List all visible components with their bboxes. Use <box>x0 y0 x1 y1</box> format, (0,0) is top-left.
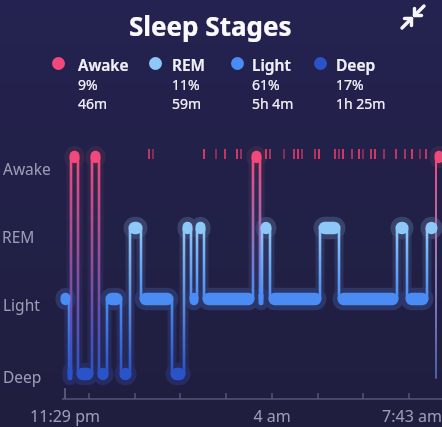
staticText: Deep <box>336 54 376 75</box>
staticText: Sleep Stages <box>129 8 292 43</box>
staticText: Light <box>252 54 291 75</box>
button[interactable] <box>398 2 430 34</box>
staticText: REM <box>2 226 35 247</box>
staticText: 7:43 am <box>382 405 442 427</box>
staticText: 4 am <box>253 405 291 427</box>
staticText: Awake <box>3 158 51 179</box>
staticText: 46m <box>78 94 108 113</box>
button[interactable]: Awake <box>78 54 129 113</box>
staticText: Light <box>3 294 40 315</box>
staticText: 1h 25m <box>336 94 386 113</box>
staticText: Awake <box>78 54 129 75</box>
staticText: 59m <box>172 94 202 113</box>
staticText: 11% <box>172 75 200 94</box>
staticText: Deep <box>3 366 42 387</box>
button[interactable]: REM <box>172 54 206 113</box>
staticText: 11:29 pm <box>30 405 100 427</box>
button[interactable]: Sleep Stages <box>90 8 330 43</box>
staticText: 61% <box>252 75 280 94</box>
button[interactable]: Deep <box>336 54 386 113</box>
staticText: REM <box>172 54 206 75</box>
staticText: 17% <box>336 75 364 94</box>
button[interactable]: Light <box>252 54 294 113</box>
staticText: 5h 4m <box>252 94 294 113</box>
staticText: 9% <box>78 75 98 94</box>
